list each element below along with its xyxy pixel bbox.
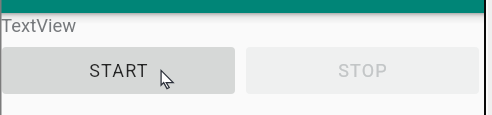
staticText: START [89,60,149,81]
staticText: TextView [1,15,77,37]
button[interactable]: STOP [246,47,479,94]
staticText: STOP [338,60,388,81]
button[interactable]: START [2,47,235,94]
